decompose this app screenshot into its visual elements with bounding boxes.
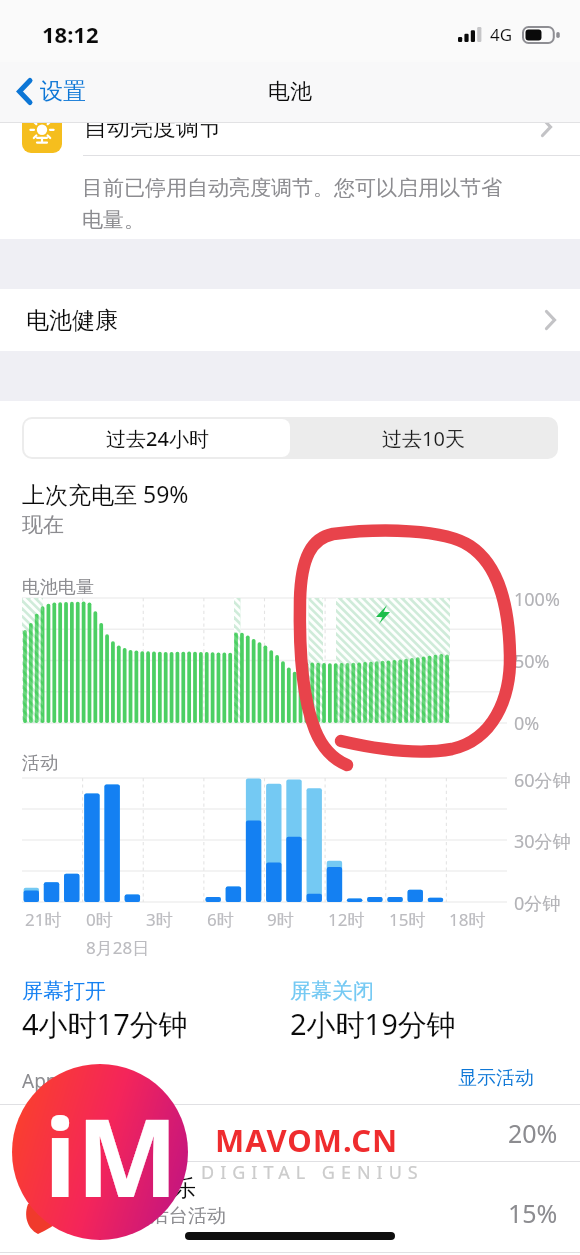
staticText: 18:12 (42, 19, 99, 49)
staticText: 屏幕打开 (22, 978, 106, 1004)
staticText: 后台活动 (150, 1204, 226, 1228)
staticText: 过去10天 (382, 425, 465, 452)
staticText: 屏幕关闭 (290, 978, 374, 1004)
staticText: 电池 (268, 78, 312, 106)
staticText: 20% (508, 1116, 558, 1150)
staticText: 15时 (389, 908, 426, 931)
staticText: 3时 (146, 908, 173, 931)
staticText: 过去24小时 (106, 425, 209, 452)
staticText: 8月28日 (86, 936, 150, 959)
staticText: 音乐 (150, 1174, 196, 1203)
staticText: 2小时19分钟 (290, 1004, 456, 1044)
staticText: 活动 (22, 752, 58, 775)
staticText: 15% (508, 1196, 558, 1230)
button[interactable]: 过去10天 (290, 419, 556, 457)
staticText: 0时 (86, 908, 113, 931)
button[interactable]: 20% (0, 1105, 580, 1161)
staticText: 60分钟 (514, 768, 571, 793)
staticText: 电池电量 (22, 576, 94, 599)
staticText: iM (44, 1082, 179, 1229)
staticText: 9时 (267, 908, 294, 931)
staticText: 现在 (22, 512, 64, 538)
staticText: 12时 (328, 908, 365, 931)
staticText: MAVOM.CN (215, 1119, 399, 1161)
staticText: 显示活动 (458, 1066, 534, 1090)
staticText: 50% (514, 649, 550, 674)
staticText: 100% (514, 587, 560, 612)
button[interactable]: 显示活动 (458, 1066, 534, 1090)
button[interactable]: 音乐 (0, 1162, 580, 1252)
button[interactable]: 电池健康 (0, 289, 580, 351)
staticText: 自动亮度调节 (84, 113, 222, 142)
staticText: 21时 (25, 908, 62, 931)
staticText: 电池健康 (26, 306, 118, 335)
staticText: 6时 (207, 908, 234, 931)
staticText: 30分钟 (514, 829, 571, 854)
button[interactable]: 设置 (17, 77, 86, 106)
staticText: App (22, 1068, 58, 1094)
staticText: 4G (490, 23, 513, 46)
button[interactable]: 自动亮度调节 (0, 100, 580, 156)
staticText: DIGITAL GENIUS (201, 1160, 424, 1185)
staticText: 设置 (40, 77, 86, 106)
staticText: 0% (514, 711, 540, 736)
staticText: 0分钟 (514, 891, 561, 916)
staticText: 18时 (449, 908, 486, 931)
staticText: 目前已停用自动亮度调节。您可以启用以节省电量。 (82, 175, 512, 233)
button[interactable]: 过去24小时 (24, 419, 290, 457)
staticText: 4小时17分钟 (22, 1004, 188, 1044)
staticText: 上次充电至 59% (22, 478, 189, 509)
